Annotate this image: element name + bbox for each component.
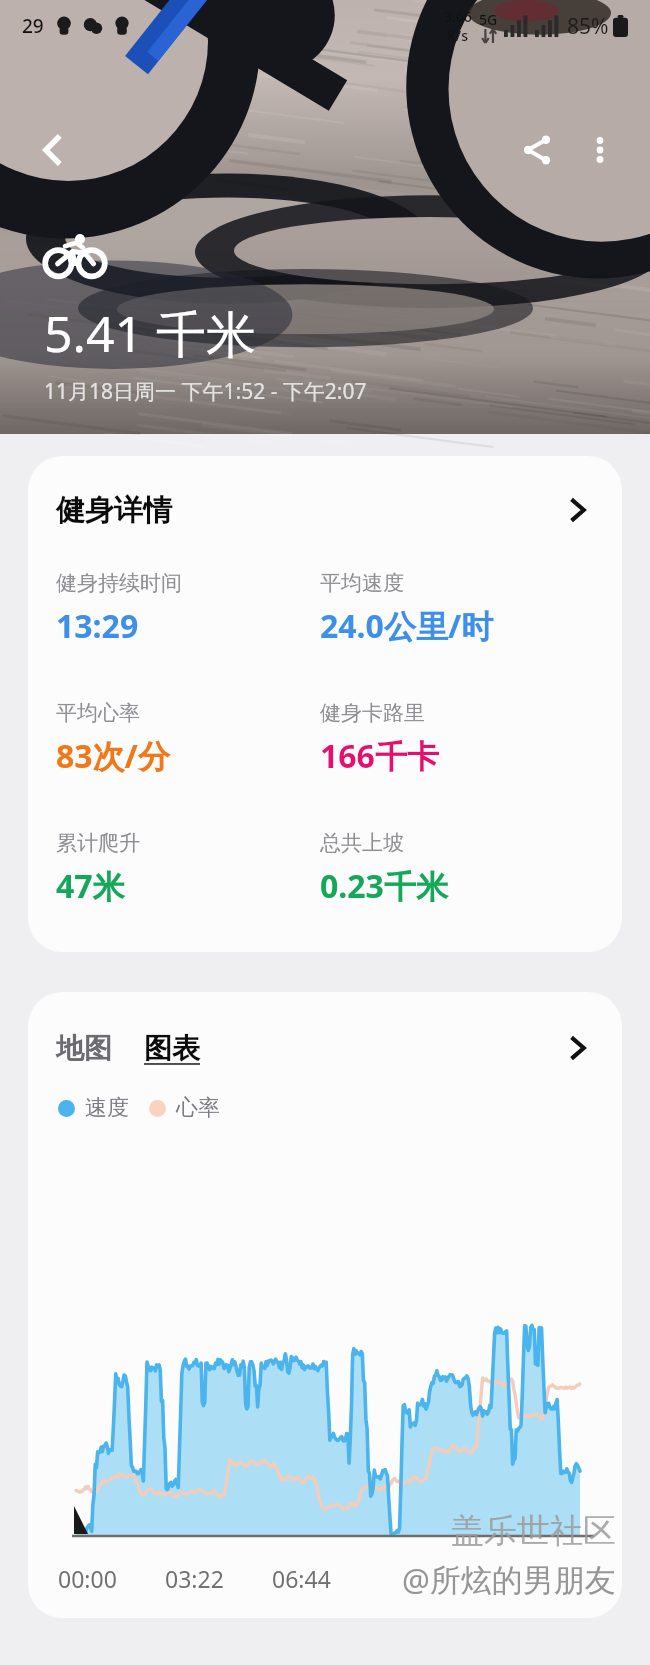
staticText: 00:00 <box>58 1563 117 1594</box>
staticText: 速度 <box>85 1094 129 1122</box>
other: Open fitness details <box>558 490 598 530</box>
button[interactable]: Back <box>20 117 86 183</box>
staticText: 166千卡 <box>320 734 439 778</box>
staticText: 健身详情 <box>56 492 172 529</box>
staticText: @所炫的男朋友 <box>402 1558 616 1600</box>
staticText: 健身持续时间 <box>56 570 182 596</box>
staticText: K/s <box>447 26 469 45</box>
staticText: 06:44 <box>272 1563 331 1594</box>
staticText: 总共上坡 <box>320 830 404 856</box>
staticText: 盖乐世社区 <box>451 1510 616 1552</box>
staticText: 5.41 千米 <box>44 299 257 367</box>
staticText: 24.0公里/时 <box>320 604 494 648</box>
staticText: 累计爬升 <box>56 830 140 856</box>
staticText: 83次/分 <box>56 734 170 778</box>
button[interactable]: 图表 <box>144 1031 200 1066</box>
staticText: 3.66 <box>444 7 472 26</box>
button[interactable]: Share <box>504 117 570 183</box>
button[interactable]: 地图 <box>56 1031 112 1066</box>
staticText: 心率 <box>176 1094 220 1122</box>
staticText: 85% <box>567 12 609 41</box>
staticText: 平均心率 <box>56 700 140 726</box>
staticText: 03:22 <box>165 1563 224 1594</box>
staticText: 健身卡路里 <box>320 700 425 726</box>
staticText: 图表 <box>144 1031 200 1066</box>
button[interactable]: 健身详情 <box>28 456 622 952</box>
staticText: 29 <box>22 13 44 39</box>
staticText: 0.23千米 <box>320 864 448 908</box>
button[interactable]: Open chart <box>558 1028 598 1068</box>
staticText: 5G <box>479 10 498 29</box>
staticText: 平均速度 <box>320 570 404 596</box>
staticText: 47米 <box>56 864 125 908</box>
staticText: 13:29 <box>56 604 139 648</box>
staticText: 地图 <box>56 1031 112 1066</box>
staticText: 11月18日周一 下午1:52 - 下午2:07 <box>44 377 367 406</box>
button[interactable]: More options <box>570 120 630 180</box>
